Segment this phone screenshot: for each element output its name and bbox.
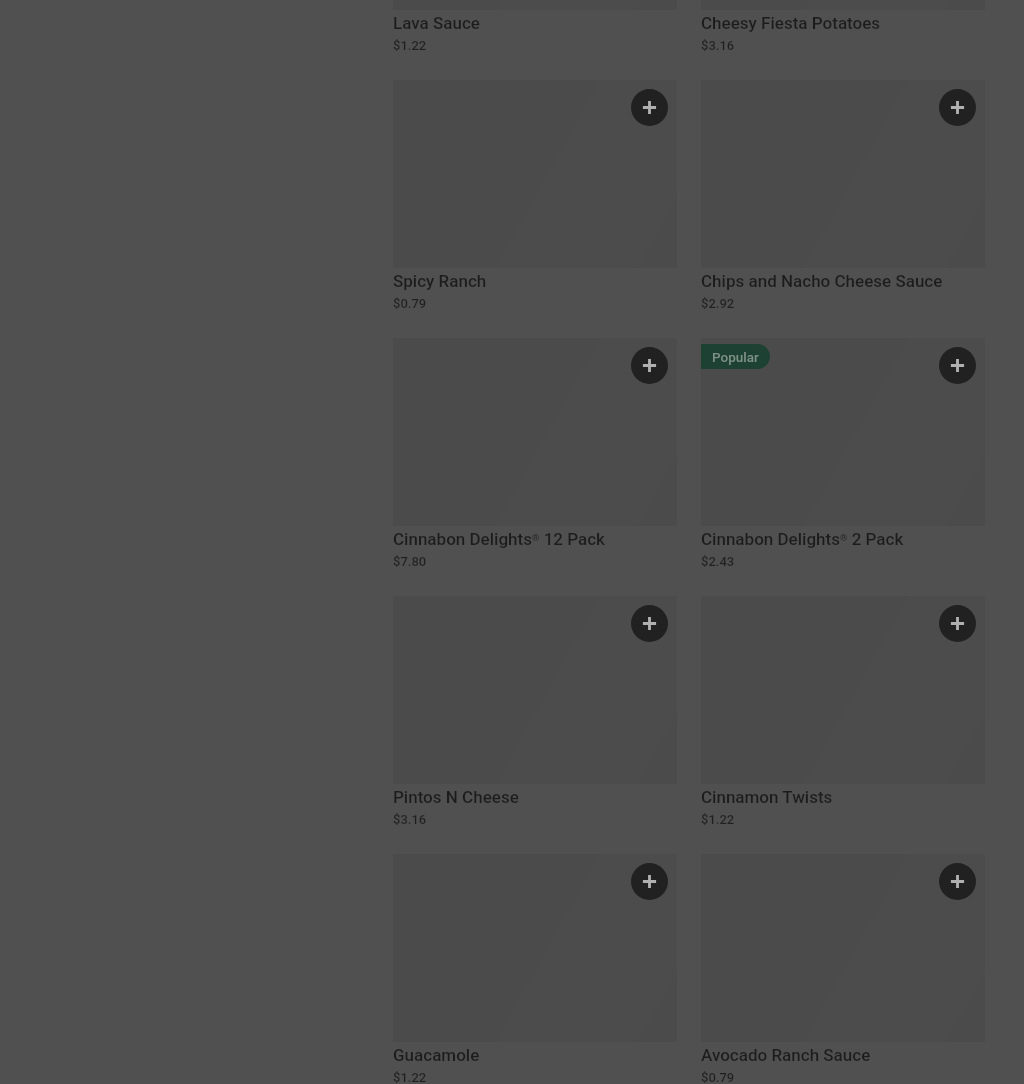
staticText: $2.92 (701, 296, 735, 311)
button[interactable]: Add Guacamole (393, 854, 677, 1084)
button[interactable]: Add Cinnamon Twists (701, 596, 985, 844)
button[interactable]: Add Cinnabon Delights® 12 Pack (393, 338, 677, 586)
staticText: Lava Sauce (393, 13, 480, 33)
staticText: $0.79 (393, 296, 427, 311)
button[interactable]: Add Lava Sauce (393, 0, 677, 70)
button[interactable]: Add Chips and Nacho Cheese Sauce (701, 80, 985, 328)
button[interactable]: Add Avocado Ranch Sauce (939, 863, 976, 900)
button[interactable]: Popular (701, 338, 985, 586)
staticText: Cheesy Fiesta Potatoes (701, 13, 881, 33)
staticText: Avocado Ranch Sauce (701, 1045, 871, 1065)
button[interactable]: Add Pintos N Cheese (393, 596, 677, 844)
staticText: $2.43 (701, 554, 735, 569)
button[interactable]: Add Chips and Nacho Cheese Sauce (939, 89, 976, 126)
staticText: Spicy Ranch (393, 271, 487, 291)
button[interactable]: Add Cheesy Fiesta Potatoes (701, 0, 985, 70)
staticText: Popular (712, 349, 759, 365)
staticText: $3.16 (393, 812, 427, 827)
staticText: $1.22 (701, 812, 735, 827)
staticText: $0.79 (701, 1070, 735, 1084)
button[interactable]: Add Avocado Ranch Sauce (701, 854, 985, 1084)
button[interactable]: Add Guacamole (631, 863, 668, 900)
staticText: Cinnabon Delights® 2 Pack (701, 529, 904, 549)
button[interactable]: Add Cinnabon Delights® 2 Pack (939, 347, 976, 384)
button[interactable]: Add Spicy Ranch (631, 89, 668, 126)
staticText: $3.16 (701, 38, 735, 53)
staticText: Pintos N Cheese (393, 787, 519, 807)
staticText: $1.22 (393, 1070, 427, 1084)
staticText: $7.80 (393, 554, 427, 569)
staticText: Cinnamon Twists (701, 787, 833, 807)
staticText: Cinnabon Delights® 12 Pack (393, 529, 605, 549)
button[interactable]: Add Spicy Ranch (393, 80, 677, 328)
staticText: Guacamole (393, 1045, 480, 1065)
button[interactable]: Add Cinnamon Twists (939, 605, 976, 642)
button[interactable]: Add Pintos N Cheese (631, 605, 668, 642)
button[interactable]: Add Cinnabon Delights® 12 Pack (631, 347, 668, 384)
staticText: Chips and Nacho Cheese Sauce (701, 271, 943, 291)
staticText: $1.22 (393, 38, 427, 53)
